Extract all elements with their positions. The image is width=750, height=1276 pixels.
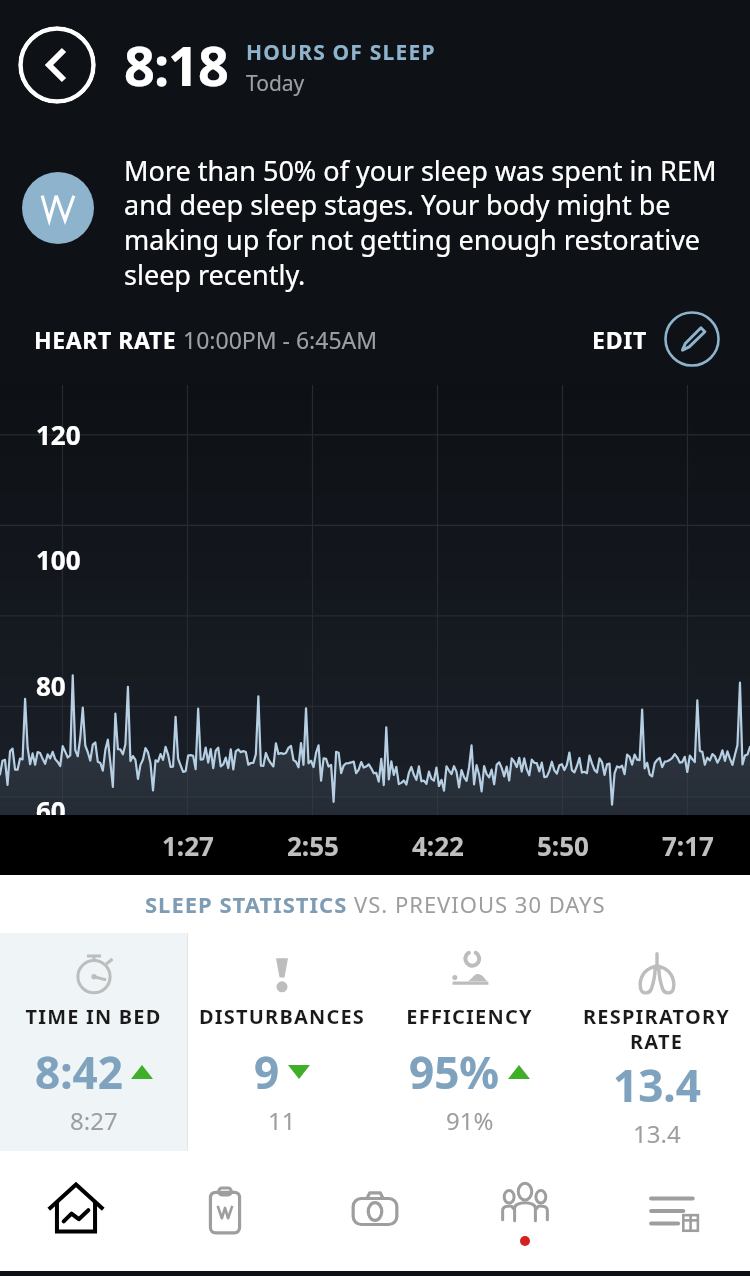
staticText: 11 [268,1104,296,1137]
button[interactable]: DISTURBANCES [188,933,376,1151]
staticText: HOURS OF SLEEP [246,38,436,67]
staticText: 91% [446,1104,494,1137]
staticText: 100 [36,542,81,577]
staticText: VS. PREVIOUS 30 DAYS [354,889,606,919]
staticText: EDIT [592,324,648,355]
staticText: 40 [36,919,66,954]
staticText: 8:27 [70,1104,118,1137]
button[interactable]: More [600,1151,750,1271]
staticText: 10:00PM - 6:45AM [183,324,378,355]
staticText: 1:27 [162,828,214,863]
staticText: SLEEP STATISTICS [145,889,354,919]
button[interactable]: Community [450,1151,600,1271]
staticText: 8:18 [124,28,228,102]
staticText: 5:50 [537,828,589,863]
staticText: 7:17 [662,828,714,863]
staticText: Today [246,69,305,98]
staticText: 120 [36,417,81,452]
button[interactable]: Journal [150,1151,300,1271]
staticText: 2:55 [287,828,339,863]
staticText: EFFICIENCY [380,1003,559,1030]
staticText: 60 [36,793,66,828]
staticText: 9 [254,1042,280,1102]
staticText: TIME IN BED [4,1003,183,1030]
staticText: 95% [409,1042,500,1102]
button[interactable]: Camera [300,1151,450,1271]
button[interactable]: EFFICIENCY [376,933,563,1151]
staticText: More than 50% of your sleep was spent in… [124,152,724,293]
button[interactable]: EDIT [586,305,726,373]
button[interactable]: Back [18,26,96,104]
staticText: 80 [36,668,66,703]
button[interactable]: TIME IN BED [0,933,187,1151]
staticText: DISTURBANCES [192,1003,372,1030]
button[interactable]: Home [22,1157,130,1271]
staticText: 8:42 [35,1042,123,1102]
button[interactable]: RESPIRATORY RATE [563,933,750,1151]
staticText: 13.4 [633,1117,681,1150]
staticText: RESPIRATORY RATE [567,1003,746,1055]
staticText: 13.4 [613,1055,701,1115]
staticText: 4:22 [412,828,464,863]
staticText: HEART RATE [34,324,183,355]
